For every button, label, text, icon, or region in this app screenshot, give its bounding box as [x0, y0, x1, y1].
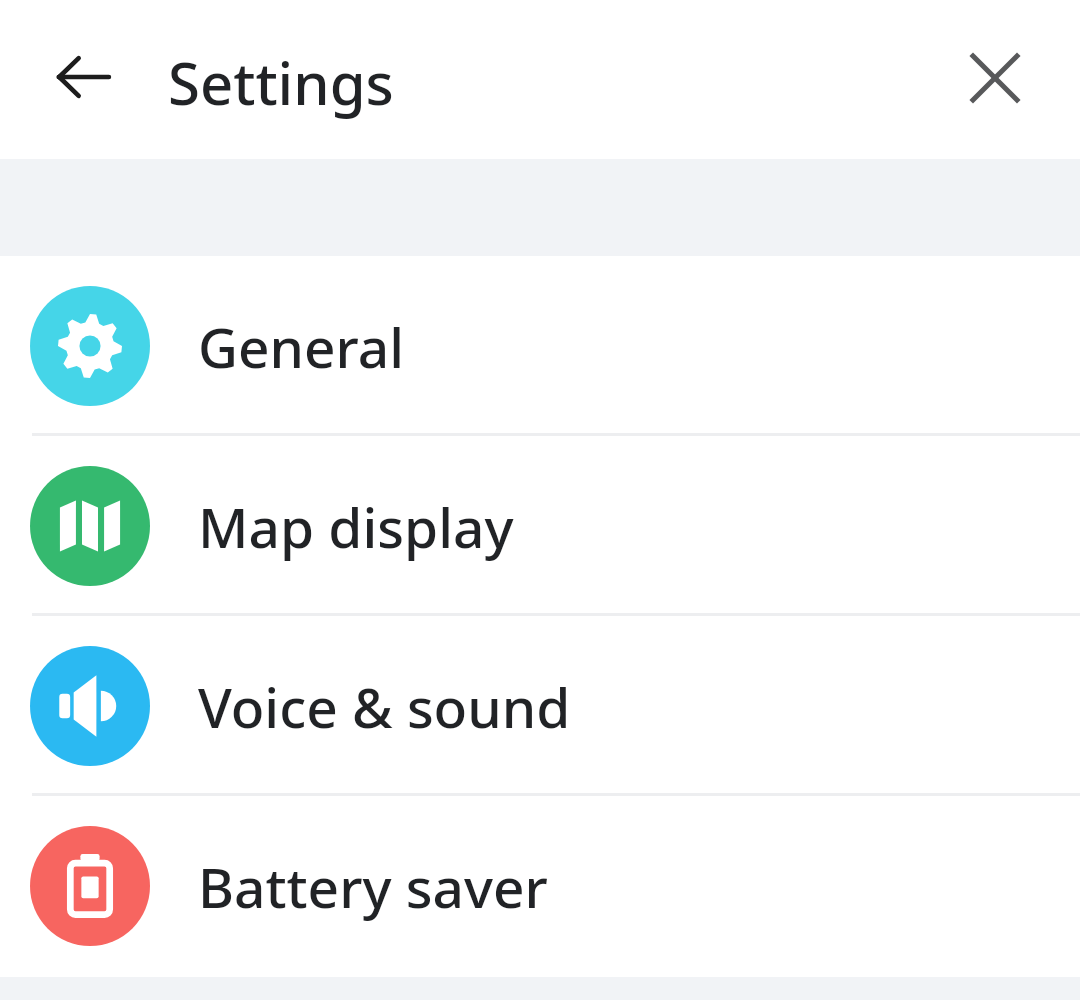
button[interactable]: Map display — [0, 436, 1080, 616]
button[interactable]: Back — [36, 30, 130, 124]
staticText: Battery saver — [198, 849, 548, 924]
button[interactable]: General — [0, 256, 1080, 436]
staticText: General — [198, 309, 405, 384]
staticText: Map display — [198, 489, 514, 564]
button[interactable]: Close — [948, 31, 1042, 125]
staticText: Voice & sound — [198, 669, 571, 744]
button[interactable]: Battery saver — [0, 796, 1080, 976]
button[interactable]: Voice & sound — [0, 616, 1080, 796]
staticText: Settings — [168, 43, 394, 122]
